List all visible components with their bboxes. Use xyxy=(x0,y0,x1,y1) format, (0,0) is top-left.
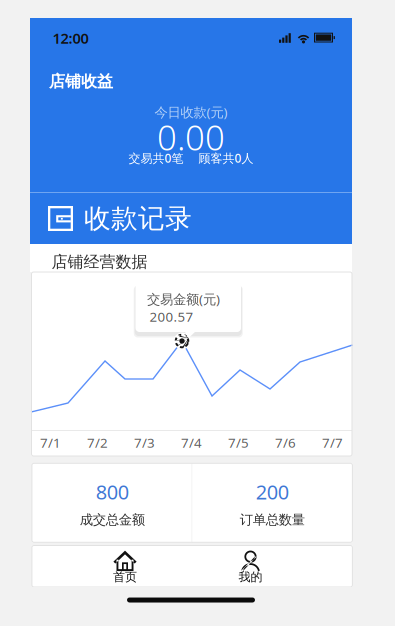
staticText: 7/5 xyxy=(228,434,249,451)
staticText: 店铺经营数据 xyxy=(52,252,148,272)
staticText: 订单总数量 xyxy=(240,512,305,528)
staticText: 7/2 xyxy=(87,434,108,451)
button[interactable]: 我的 xyxy=(195,545,305,587)
staticText: 7/6 xyxy=(275,434,296,451)
staticText: 今日收款(元) xyxy=(154,103,227,121)
staticText: 200 xyxy=(256,478,289,505)
button[interactable]: 200 xyxy=(192,463,352,542)
staticText: 交易共0笔 xyxy=(128,150,183,166)
staticText: 12:00 xyxy=(52,28,88,48)
staticText: 交易金额(元) xyxy=(147,290,220,308)
staticText: 首页 xyxy=(113,570,137,584)
staticText: 收款记录 xyxy=(84,202,192,235)
staticText: 成交总金额 xyxy=(80,512,145,528)
button[interactable]: 收款记录 xyxy=(30,193,352,244)
staticText: 顾客共0人 xyxy=(198,150,253,166)
staticText: 店铺收益 xyxy=(49,72,113,91)
staticText: 200.57 xyxy=(149,308,193,325)
staticText: 0.00 xyxy=(157,114,225,160)
button[interactable]: 800 xyxy=(32,463,192,542)
staticText: 7/4 xyxy=(181,434,202,451)
staticText: 7/1 xyxy=(40,434,61,451)
button[interactable]: 首页 xyxy=(70,545,180,587)
staticText: 我的 xyxy=(238,570,262,584)
staticText: 7/3 xyxy=(134,434,155,451)
staticText: 7/7 xyxy=(322,434,343,451)
staticText: 800 xyxy=(96,478,129,505)
